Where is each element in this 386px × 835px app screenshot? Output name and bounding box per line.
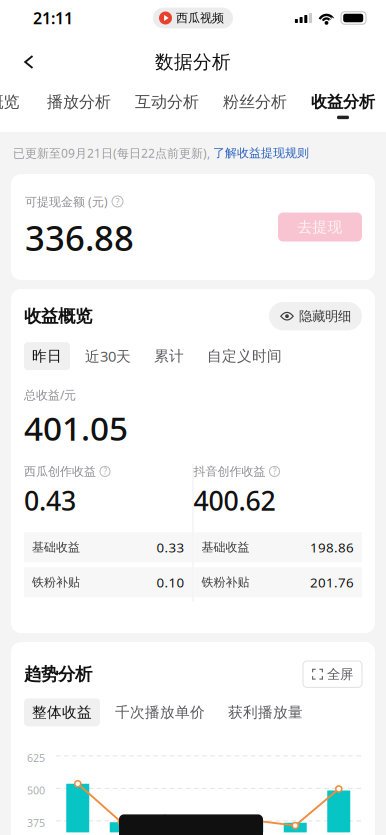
- button[interactable]: 昨日: [24, 342, 70, 370]
- button[interactable]: 全屏: [303, 661, 362, 687]
- staticText: 趋势分析: [24, 663, 92, 685]
- staticText: 累计: [154, 347, 184, 365]
- staticText: 整体收益: [32, 703, 92, 721]
- staticText: 全屏: [327, 666, 353, 682]
- staticText: 铁粉补贴: [201, 575, 249, 589]
- staticText: ?: [103, 466, 106, 477]
- staticText: 基础收益: [201, 540, 249, 554]
- staticText: 336.88: [25, 214, 134, 260]
- button[interactable]: 隐藏明细: [269, 302, 362, 330]
- button[interactable]: 去提现: [278, 212, 362, 241]
- staticText: 已更新至09月21日(每日22点前更新),: [13, 145, 213, 161]
- staticText: 625: [27, 751, 45, 765]
- staticText: 播放分析: [47, 92, 111, 112]
- button[interactable]: 收益分析: [299, 88, 386, 119]
- button[interactable]: 累计: [146, 342, 192, 370]
- staticText: 互动分析: [135, 92, 199, 112]
- staticText: 500: [27, 783, 45, 798]
- staticText: 总收益/元: [24, 387, 76, 403]
- staticText: 获利播放量: [228, 703, 303, 721]
- button[interactable]: 近30天: [77, 341, 139, 371]
- staticText: 375: [27, 816, 45, 830]
- staticText: ?: [273, 466, 276, 477]
- button[interactable]: 自定义时间: [199, 342, 290, 370]
- staticText: 抖音创作收益: [193, 464, 265, 479]
- staticText: 隐藏明细: [299, 308, 351, 324]
- button[interactable]: 粉丝分析: [211, 88, 299, 119]
- staticText: 自定义时间: [207, 347, 282, 365]
- staticText: 概览: [0, 92, 19, 112]
- staticText: 0.43: [24, 483, 76, 518]
- staticText: 201.76: [310, 573, 354, 591]
- staticText: 粉丝分析: [223, 92, 287, 112]
- staticText: 0.10: [156, 573, 184, 591]
- button[interactable]: 千次播放单价: [107, 698, 213, 726]
- staticText: 去提现: [297, 218, 342, 236]
- staticText: 可提现金额 (元): [25, 193, 108, 209]
- staticText: 400.62: [193, 483, 275, 518]
- staticText: 198.86: [310, 538, 354, 556]
- button[interactable]: 播放分析: [35, 88, 123, 119]
- staticText: 21:11: [33, 7, 73, 29]
- button[interactable]: Back: [7, 40, 51, 84]
- staticText: 401.05: [24, 406, 128, 450]
- staticText: 了解收益提现规则: [213, 146, 309, 160]
- button[interactable]: 概览: [0, 88, 35, 119]
- staticText: 0.33: [156, 538, 184, 556]
- button[interactable]: 了解收益提现规则: [213, 146, 309, 160]
- staticText: 近30天: [85, 346, 131, 366]
- staticText: 数据分析: [155, 50, 231, 73]
- staticText: 铁粉补贴: [32, 575, 80, 589]
- staticText: 收益分析: [311, 92, 375, 112]
- staticText: 基础收益: [32, 540, 80, 554]
- button[interactable]: 互动分析: [123, 88, 211, 119]
- button[interactable]: 整体收益: [24, 698, 100, 726]
- staticText: 西瓜视频: [176, 11, 224, 25]
- button[interactable]: 获利播放量: [220, 698, 311, 726]
- staticText: 收益概览: [24, 305, 92, 327]
- staticText: 昨日: [32, 347, 62, 365]
- staticText: ?: [115, 195, 119, 208]
- staticText: 西瓜创作收益: [24, 464, 96, 479]
- staticText: 千次播放单价: [115, 703, 205, 721]
